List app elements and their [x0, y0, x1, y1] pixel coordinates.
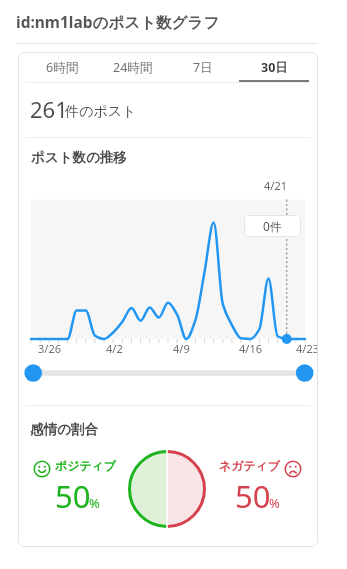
- staticText: 3/26: [38, 341, 61, 356]
- staticText: 7日: [193, 59, 213, 76]
- staticText: 4/2: [106, 341, 123, 356]
- staticText: 30日: [261, 59, 288, 76]
- other: ネガティブ: [284, 460, 302, 478]
- staticText: id:nm1labのポスト数グラフ: [16, 11, 220, 32]
- staticText: 4/23: [296, 341, 318, 356]
- staticText: 50: [235, 475, 271, 517]
- staticText: 50: [55, 475, 91, 517]
- staticText: 24時間: [113, 59, 153, 76]
- staticText: 4/9: [173, 341, 190, 356]
- staticText: 0件: [263, 218, 282, 234]
- staticText: ポジティブ: [55, 459, 116, 474]
- button[interactable]: 30日: [239, 53, 309, 82]
- staticText: ネガティブ: [219, 459, 280, 474]
- staticText: 261: [30, 94, 68, 124]
- staticText: 4/21: [264, 178, 287, 193]
- button[interactable]: 7日: [168, 53, 238, 82]
- staticText: 件のポスト: [65, 103, 137, 121]
- other: ポジティブ: [33, 460, 51, 478]
- button[interactable]: 6時間: [27, 53, 97, 82]
- staticText: 感情の割合: [30, 421, 98, 438]
- button[interactable]: 24時間: [98, 53, 168, 82]
- staticText: %: [89, 494, 100, 512]
- staticText: 6時間: [46, 59, 79, 76]
- staticText: ポスト数の推移: [31, 149, 127, 166]
- staticText: %: [269, 494, 280, 512]
- staticText: 4/16: [239, 341, 262, 356]
